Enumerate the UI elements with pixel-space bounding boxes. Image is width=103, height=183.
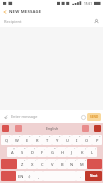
staticText: U	[66, 138, 69, 143]
staticText: $	[34, 147, 36, 150]
button[interactable]: :)	[25, 171, 34, 181]
staticText: EN	[18, 174, 24, 179]
staticText: 1	[9, 135, 11, 138]
button[interactable]: X	[27, 159, 37, 169]
button[interactable]: Voice input	[82, 125, 89, 132]
button[interactable]: J	[67, 147, 77, 157]
staticText: I	[76, 138, 78, 143]
staticText: Next	[90, 174, 98, 178]
staticText: O	[85, 138, 89, 143]
staticText: 3	[29, 135, 31, 138]
button[interactable]: W	[12, 135, 22, 145]
button[interactable]: EN	[16, 171, 25, 181]
button[interactable]: N	[67, 159, 77, 169]
staticText: '	[45, 159, 46, 162]
staticText: #	[24, 147, 26, 150]
staticText: R	[36, 138, 39, 143]
button[interactable]: V	[47, 159, 57, 169]
staticText: NEW MESSAGE	[9, 9, 42, 15]
button[interactable]: More options	[94, 125, 101, 132]
staticText: *	[24, 159, 26, 162]
button[interactable]: P	[92, 135, 102, 145]
staticText: Z	[21, 162, 24, 167]
staticText: C	[41, 162, 44, 167]
staticText: 7	[69, 135, 71, 138]
staticText: Enter message	[11, 114, 79, 119]
button[interactable]: B	[57, 159, 67, 169]
staticText: 15:51	[84, 2, 93, 6]
staticText: L	[91, 150, 94, 155]
staticText: 8	[79, 135, 81, 138]
staticText: Q	[5, 138, 9, 143]
button[interactable]: O	[82, 135, 92, 145]
staticText: ?	[85, 159, 86, 162]
button[interactable]: Q	[1, 135, 12, 145]
staticText: V	[51, 162, 54, 167]
button[interactable]: Attach	[2, 113, 10, 121]
button[interactable]: .	[76, 171, 85, 181]
staticText: 6	[59, 135, 61, 138]
staticText: -	[65, 147, 66, 150]
button[interactable]: Add contact	[92, 17, 101, 26]
button[interactable]: Backspace	[87, 159, 102, 169]
staticText: E	[26, 138, 29, 143]
staticText: )	[95, 147, 96, 150]
staticText: 4	[39, 135, 41, 138]
button[interactable]: Symbols	[1, 171, 16, 181]
staticText: N	[70, 162, 74, 167]
staticText: English	[22, 126, 82, 131]
staticText: @	[13, 147, 16, 150]
staticText: P	[96, 138, 99, 143]
button[interactable]: ,	[34, 171, 43, 181]
staticText: (	[85, 147, 86, 150]
button[interactable]: T	[42, 135, 52, 145]
button[interactable]: F	[37, 147, 47, 157]
staticText: "	[35, 159, 36, 162]
button[interactable]: R	[32, 135, 42, 145]
staticText: ,	[38, 174, 40, 179]
staticText: B	[61, 162, 64, 167]
staticText: W	[15, 138, 19, 143]
button[interactable]: Keyboard type	[2, 125, 9, 132]
staticText: Recipient	[4, 19, 92, 24]
button[interactable]: U	[62, 135, 72, 145]
button[interactable]: Emoji	[79, 113, 87, 121]
button[interactable]: SEND	[87, 113, 101, 121]
button[interactable]: E	[22, 135, 32, 145]
staticText: 2	[19, 135, 21, 138]
button[interactable]: Shift	[1, 159, 17, 169]
button[interactable]: C	[37, 159, 47, 169]
button[interactable]: Next	[85, 171, 102, 181]
staticText: ;	[65, 159, 66, 162]
staticText: M	[80, 162, 84, 167]
staticText: G	[51, 150, 54, 155]
button[interactable]: A	[7, 147, 17, 157]
staticText: Y	[56, 138, 59, 143]
staticText: !	[75, 159, 76, 162]
staticText: D	[31, 150, 34, 155]
button[interactable]: Y	[52, 135, 62, 145]
button[interactable]: L	[87, 147, 97, 157]
staticText: J	[71, 150, 73, 155]
staticText: 5	[49, 135, 51, 138]
staticText: 9	[89, 135, 91, 138]
staticText: H	[61, 150, 64, 155]
staticText: :	[55, 159, 56, 162]
staticText: A	[11, 150, 14, 155]
button[interactable]: D	[27, 147, 37, 157]
staticText: .	[80, 174, 82, 179]
staticText: F	[41, 150, 44, 155]
button[interactable]: Back	[0, 7, 9, 16]
button[interactable]: S	[17, 147, 27, 157]
button[interactable]: K	[77, 147, 87, 157]
button[interactable]: H	[57, 147, 67, 157]
staticText: X	[31, 162, 34, 167]
button[interactable]: Z	[17, 159, 27, 169]
staticText: T	[46, 138, 49, 143]
button[interactable]: M	[77, 159, 87, 169]
staticText: S	[21, 150, 24, 155]
button[interactable]: I	[72, 135, 82, 145]
button[interactable]: Settings	[15, 125, 22, 132]
button[interactable]: G	[47, 147, 57, 157]
